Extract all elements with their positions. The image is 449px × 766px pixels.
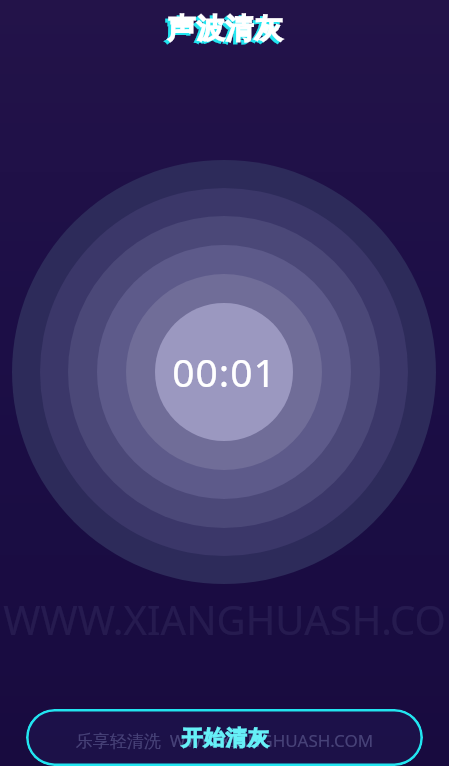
staticText: 00:01 [0,345,449,398]
staticText: WWW.XIANGHUASH.COM [0,592,449,646]
button[interactable]: 开始清灰 [26,709,423,766]
staticText: 声波清灰 [167,11,283,46]
staticText: 乐享轻清洗 WWW.XIANGHUASH.COM [0,729,449,752]
staticText: 声波清灰 [164,13,280,48]
staticText: 开始清灰 [181,725,269,751]
